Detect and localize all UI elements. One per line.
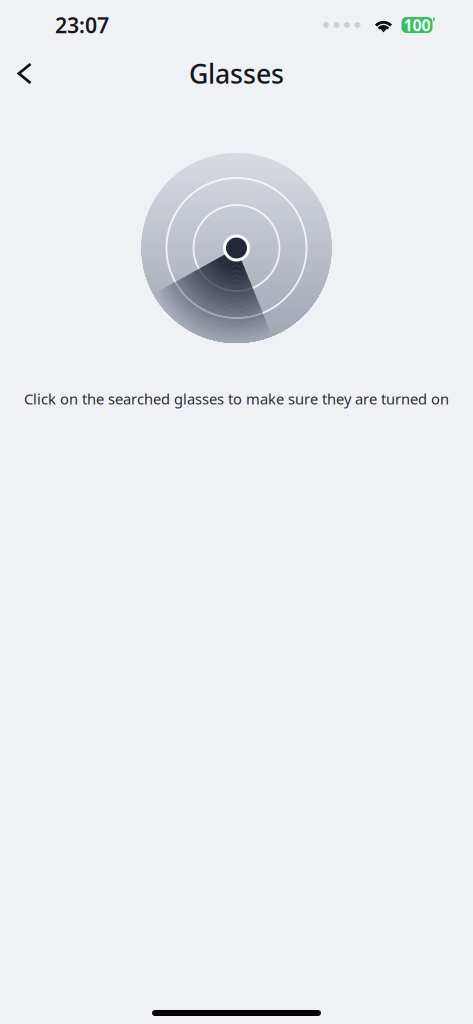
button[interactable]: Back (0, 53, 45, 93)
staticText: 100 (403, 14, 430, 36)
staticText: 23:07 (55, 11, 109, 39)
staticText: Glasses (189, 56, 284, 91)
staticText: Click on the searched glasses to make su… (24, 389, 449, 408)
